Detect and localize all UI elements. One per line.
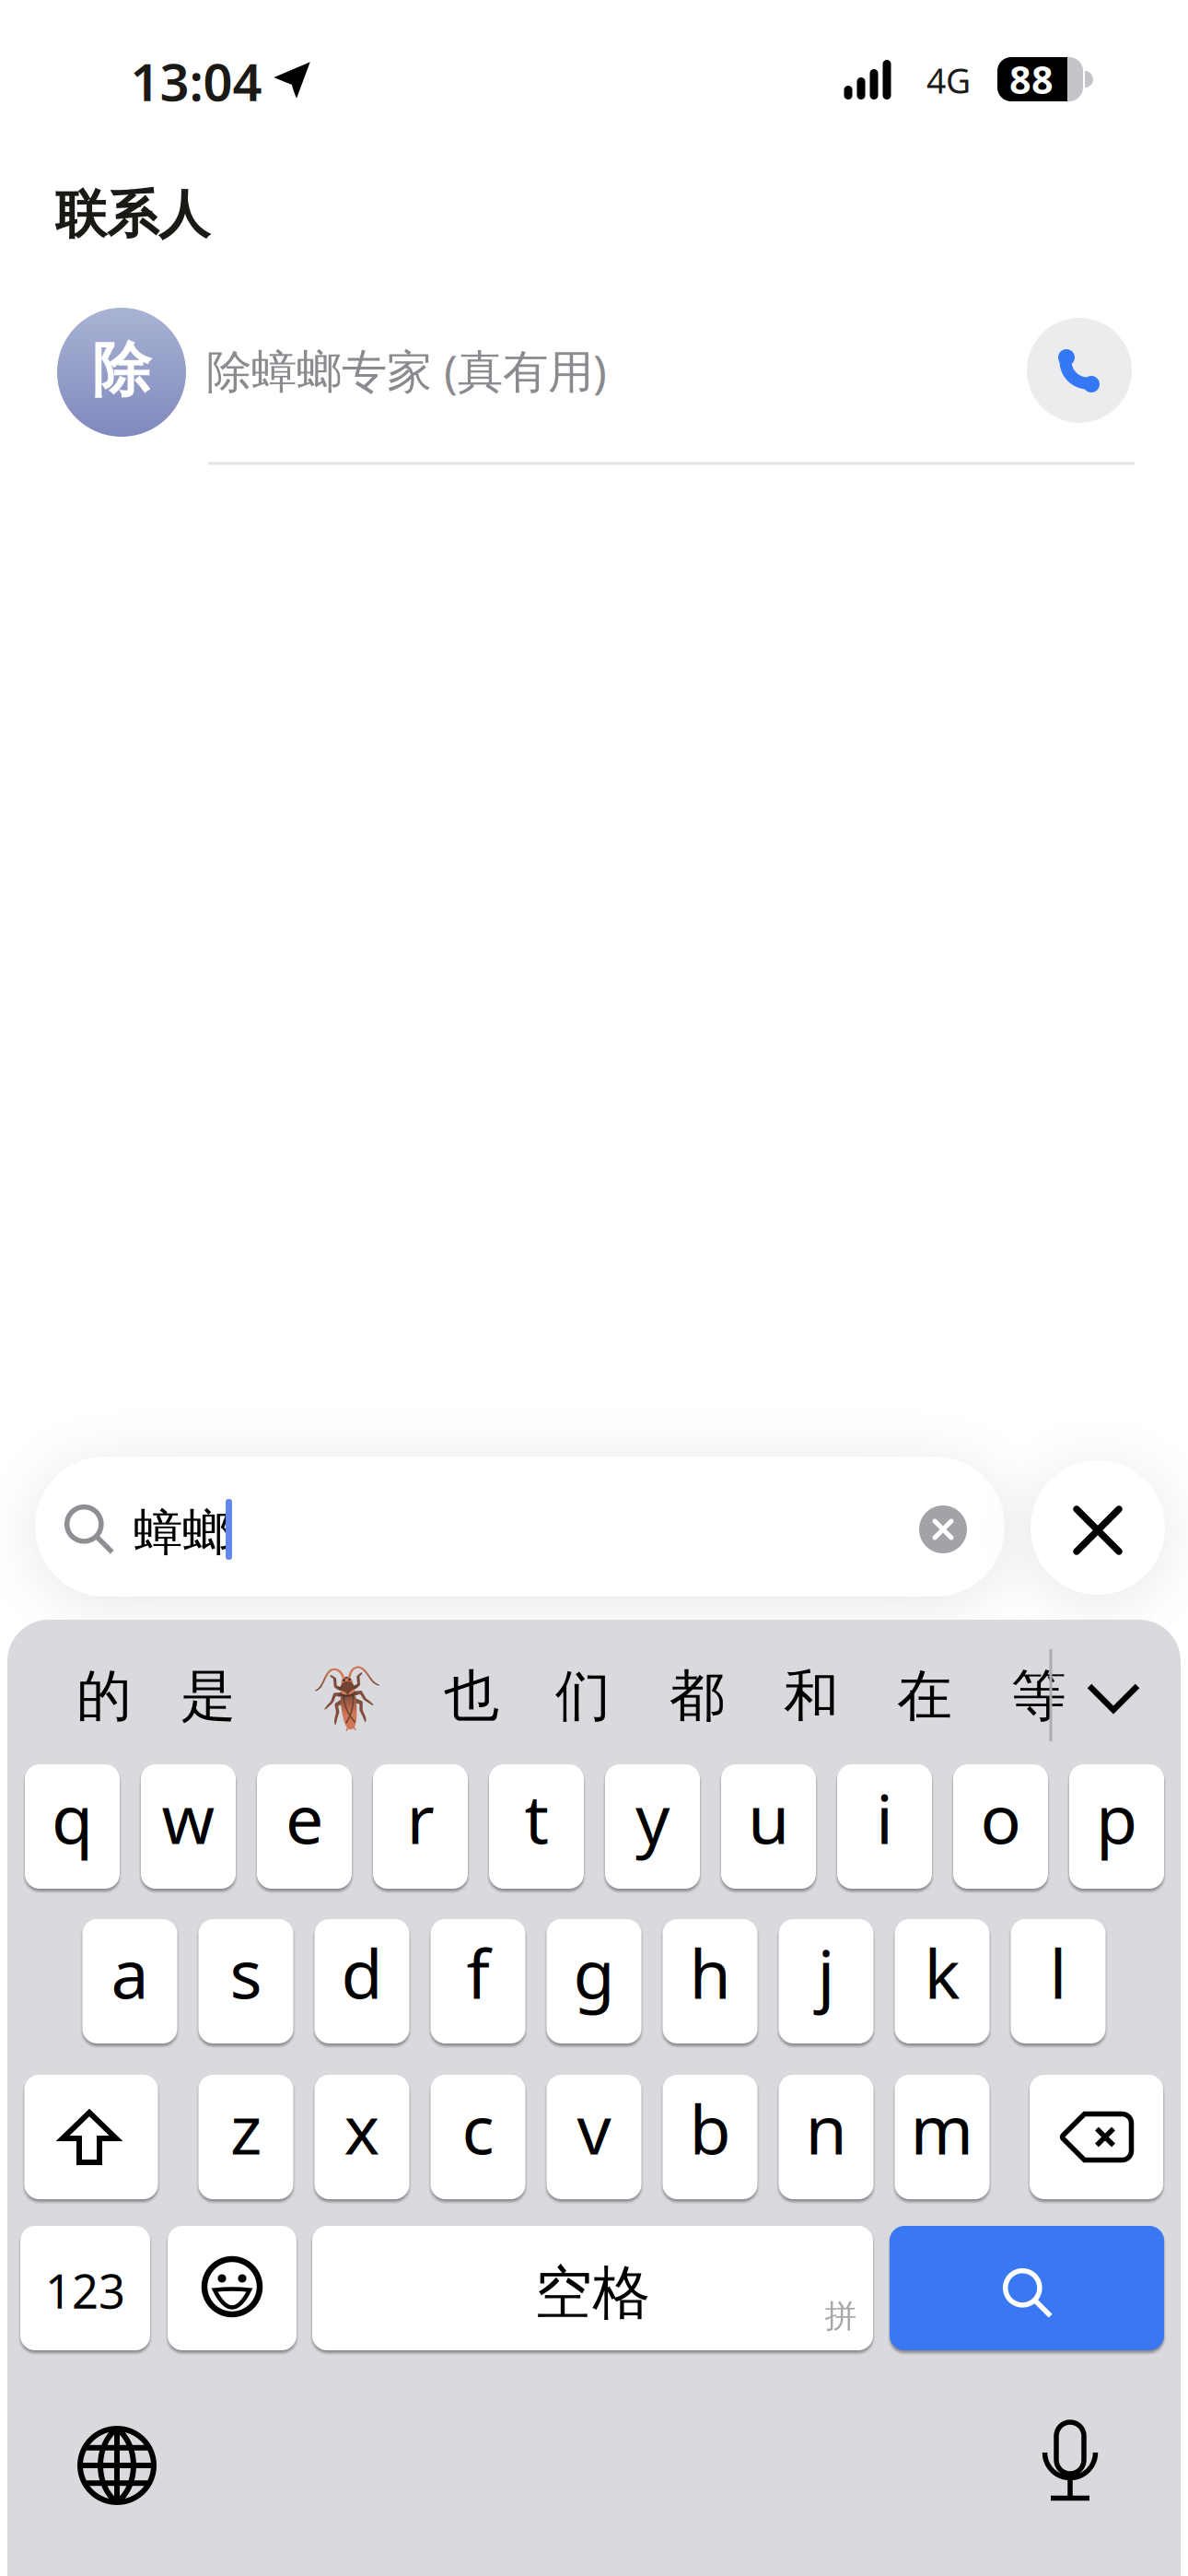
staticText: o <box>980 1773 1021 1863</box>
staticText: 和 <box>784 1662 839 1730</box>
button[interactable]: 搜索 <box>890 2226 1164 2350</box>
button[interactable]: 蟑螂 <box>35 1457 1005 1597</box>
button[interactable]: v <box>547 2075 641 2199</box>
button[interactable]: 和 <box>762 1646 861 1746</box>
button[interactable]: Shift <box>24 2075 158 2199</box>
button[interactable]: 🪳 <box>300 1647 396 1743</box>
staticText: 除蟑螂专家 (真有用) <box>206 340 607 400</box>
staticText: 13:04 <box>130 47 262 115</box>
staticText: z <box>230 2083 262 2173</box>
button[interactable]: 们 <box>533 1646 633 1746</box>
button[interactable]: d <box>314 1919 409 2043</box>
button[interactable]: y <box>605 1764 700 1889</box>
button[interactable]: b <box>663 2075 757 2199</box>
staticText: u <box>748 1773 789 1863</box>
button[interactable]: l <box>1011 1919 1106 2043</box>
staticText: e <box>285 1773 323 1863</box>
staticText: 是 <box>181 1662 236 1730</box>
button[interactable]: 听写 <box>1015 2406 1125 2517</box>
button[interactable]: g <box>547 1919 641 2043</box>
staticText: y <box>635 1773 670 1863</box>
staticText: 88 <box>1009 54 1054 105</box>
staticText: m <box>910 2083 974 2173</box>
button[interactable]: t <box>489 1764 584 1889</box>
button[interactable]: c <box>431 2075 525 2199</box>
staticText: 等 <box>1011 1662 1066 1730</box>
button[interactable]: 也 <box>422 1646 521 1746</box>
staticText: 4G <box>926 57 971 103</box>
button[interactable]: 在 <box>875 1646 974 1746</box>
button[interactable]: o <box>953 1764 1048 1889</box>
button[interactable]: 的 <box>54 1646 154 1746</box>
staticText: f <box>466 1928 489 2017</box>
staticText: b <box>689 2083 731 2173</box>
button[interactable]: a <box>82 1919 177 2043</box>
staticText: 联系人 <box>55 183 210 246</box>
button[interactable]: i <box>837 1764 932 1889</box>
staticText: r <box>407 1773 434 1863</box>
button[interactable]: p <box>1069 1764 1164 1889</box>
button[interactable]: q <box>25 1764 120 1889</box>
button[interactable]: 删除 <box>1030 2075 1163 2199</box>
staticText: 拼 <box>825 2297 857 2336</box>
button[interactable]: z <box>198 2075 293 2199</box>
staticText: 的 <box>76 1662 132 1730</box>
button[interactable]: 表情 <box>168 2226 297 2350</box>
staticText: 们 <box>555 1662 611 1730</box>
staticText: c <box>462 2083 494 2173</box>
staticText: k <box>924 1928 960 2017</box>
staticText: d <box>341 1928 383 2017</box>
staticText: 123 <box>45 2259 125 2321</box>
button[interactable]: h <box>663 1919 757 2043</box>
button[interactable]: 123 <box>20 2226 150 2350</box>
staticText: i <box>876 1773 893 1863</box>
button[interactable]: s <box>198 1919 293 2043</box>
button[interactable]: 关闭 <box>1031 1460 1165 1595</box>
staticText: h <box>689 1928 731 2017</box>
button[interactable]: k <box>895 1919 990 2043</box>
button[interactable]: u <box>721 1764 816 1889</box>
button[interactable]: 都 <box>647 1646 747 1746</box>
button[interactable]: x <box>314 2075 409 2199</box>
staticText: g <box>573 1928 615 2017</box>
staticText: a <box>111 1928 149 2017</box>
staticText: 🪳 <box>313 1663 383 1728</box>
button[interactable]: 除 <box>0 279 1188 465</box>
button[interactable]: 收起候选栏 <box>1072 1657 1155 1739</box>
staticText: n <box>805 2083 847 2173</box>
staticText: 蟑螂 <box>134 1503 231 1563</box>
staticText: j <box>817 1928 835 2017</box>
button[interactable]: f <box>431 1919 525 2043</box>
button[interactable]: r <box>373 1764 468 1889</box>
staticText: 都 <box>670 1662 725 1730</box>
button[interactable]: 是 <box>158 1646 258 1746</box>
staticText: 除 <box>92 334 151 407</box>
button[interactable]: w <box>141 1764 236 1889</box>
button[interactable]: n <box>779 2075 874 2199</box>
button[interactable]: 等 <box>989 1646 1089 1746</box>
button[interactable]: 呼叫 <box>1027 318 1132 423</box>
button[interactable]: 空格 <box>312 2226 873 2350</box>
staticText: q <box>52 1773 93 1863</box>
staticText: p <box>1096 1773 1137 1863</box>
staticText: v <box>577 2083 611 2173</box>
staticText: t <box>524 1773 548 1863</box>
button[interactable]: m <box>895 2075 990 2199</box>
button[interactable]: 切换键盘 <box>62 2410 172 2521</box>
staticText: w <box>162 1773 215 1863</box>
staticText: s <box>230 1928 262 2017</box>
staticText: 也 <box>444 1662 499 1730</box>
staticText: x <box>344 2083 380 2173</box>
button[interactable]: e <box>257 1764 352 1889</box>
staticText: l <box>1049 1928 1067 2017</box>
button[interactable]: j <box>779 1919 874 2043</box>
staticText: 空格 <box>535 2258 651 2329</box>
staticText: 在 <box>897 1662 952 1730</box>
